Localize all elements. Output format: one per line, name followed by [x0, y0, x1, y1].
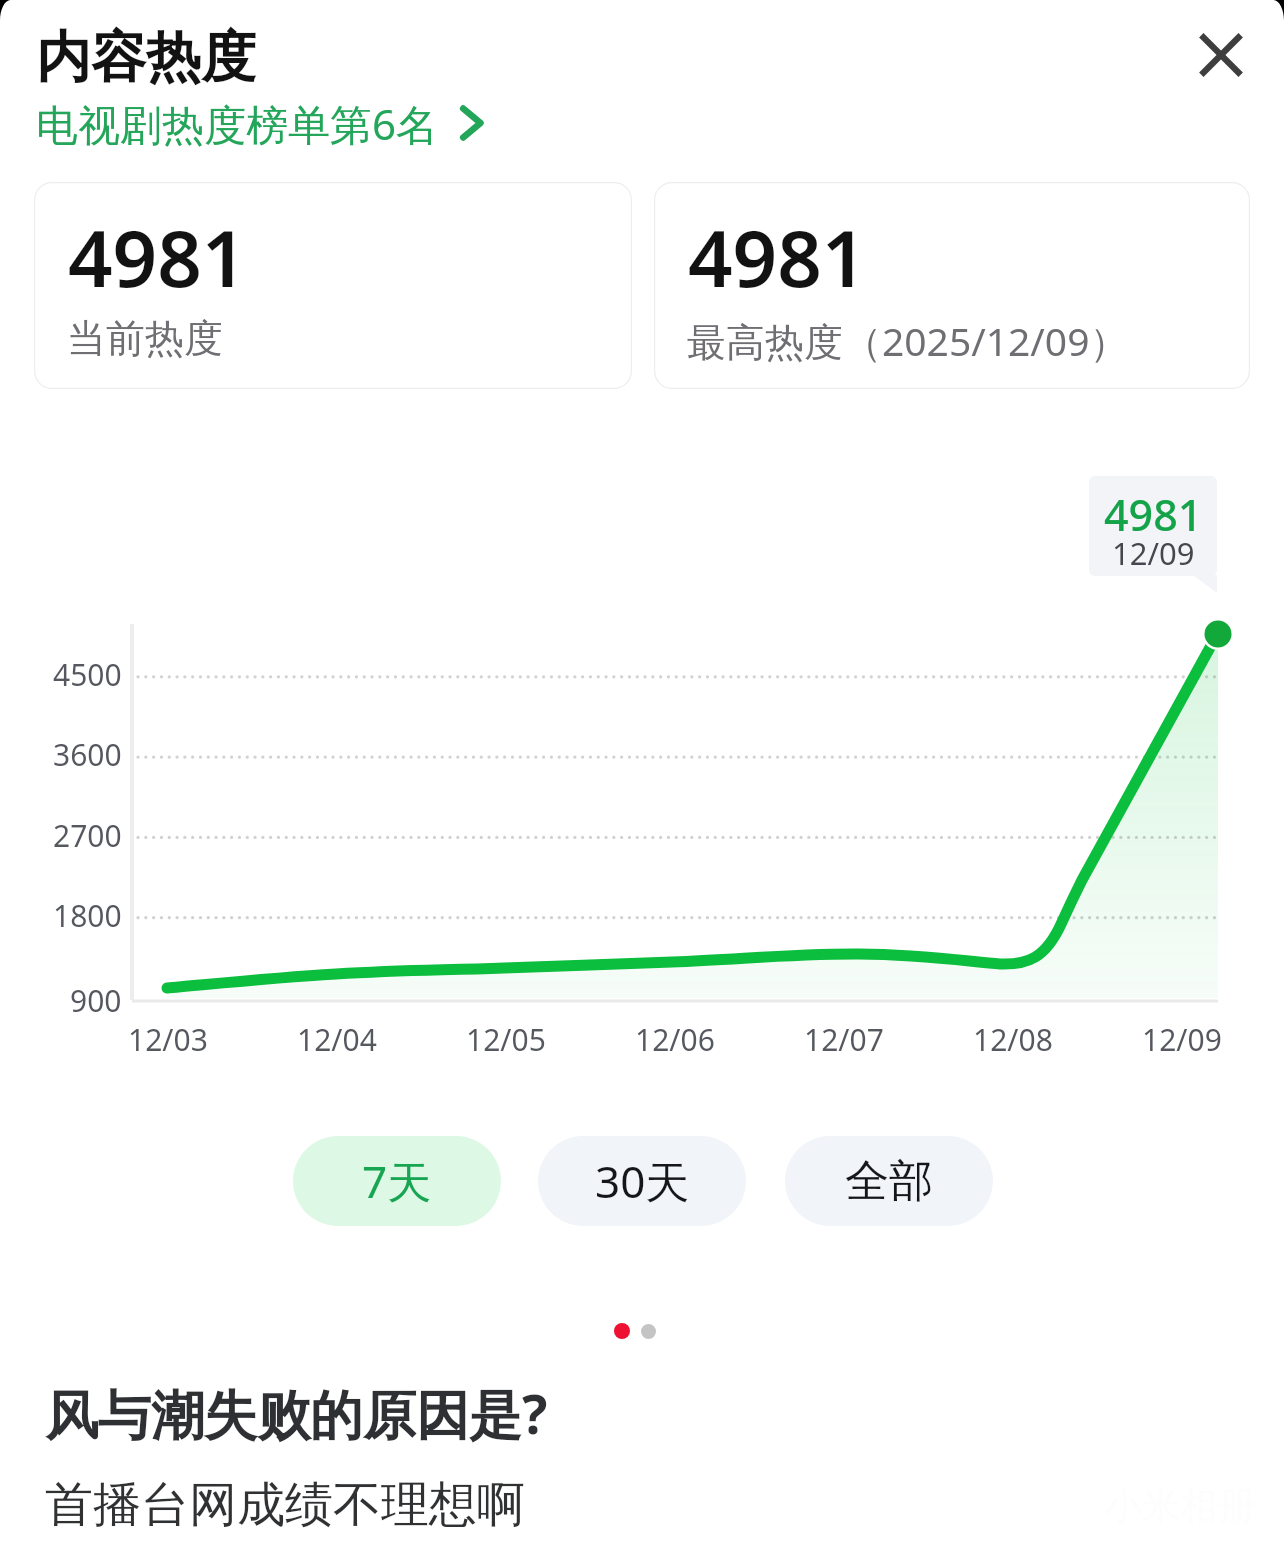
staticText: 12/09 — [1142, 1019, 1222, 1060]
button[interactable]: 全部 — [785, 1136, 993, 1226]
staticText: 全部 — [845, 1154, 933, 1209]
button[interactable]: Close — [1166, 14, 1276, 94]
staticText: 7天 — [362, 1151, 432, 1211]
button[interactable]: 30天 — [538, 1136, 746, 1226]
staticText: 3600 — [53, 734, 122, 775]
staticText: 最高热度（2025/12/09） — [687, 314, 1129, 367]
button[interactable]: 7天 — [293, 1136, 501, 1226]
staticText: 首播台网成绩不理想啊 — [45, 1475, 525, 1535]
staticText: 12/06 — [635, 1019, 715, 1060]
staticText: 4981 — [68, 204, 247, 310]
staticText: 12/09 — [1112, 532, 1195, 574]
staticText: 2700 — [53, 815, 122, 856]
staticText: 12/07 — [804, 1019, 884, 1060]
staticText: 当前热度 — [67, 314, 223, 363]
staticText: 1800 — [53, 895, 122, 936]
staticText: 30天 — [595, 1151, 690, 1211]
staticText: 12/08 — [973, 1019, 1053, 1060]
staticText: 12/03 — [128, 1019, 208, 1060]
button[interactable]: 4981 — [654, 182, 1250, 389]
staticText: 12/05 — [466, 1019, 546, 1060]
staticText: 风与潮失败的原因是? — [45, 1377, 548, 1449]
staticText: 12/04 — [297, 1019, 377, 1060]
staticText: 电视剧热度榜单第6名 — [36, 95, 439, 152]
staticText: 4981 — [1104, 485, 1203, 544]
button[interactable]: 4981 — [34, 182, 632, 389]
staticText: 4500 — [53, 654, 122, 695]
button[interactable]: 电视剧热度榜单第6名 — [36, 95, 485, 152]
staticText: 内容热度 — [36, 23, 256, 92]
staticText: 900 — [70, 980, 122, 1021]
staticText: 4981 — [688, 204, 867, 310]
